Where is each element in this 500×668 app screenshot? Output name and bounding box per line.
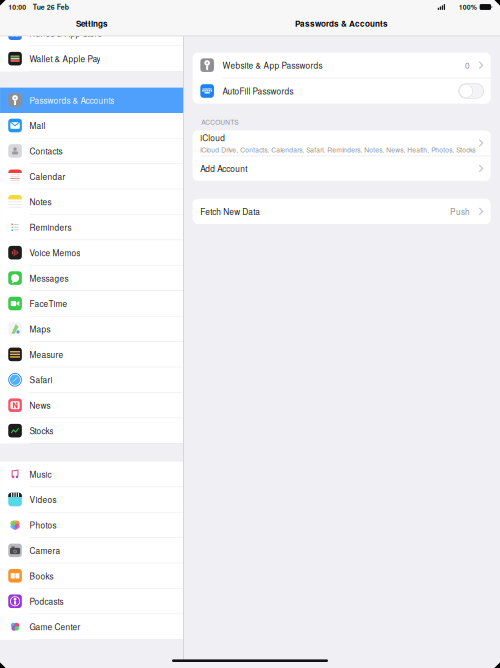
button[interactable]: A (0, 21, 183, 46)
staticText: Wallet & Apple Pay (29, 53, 100, 64)
staticText: News (29, 399, 50, 411)
staticText: Fetch New Data (200, 205, 260, 217)
staticText: Photos (29, 519, 56, 531)
staticText: 10:00 (8, 2, 26, 12)
staticText: Add Account (200, 163, 247, 174)
staticText: Stocks (29, 425, 53, 436)
staticText: Podcasts (29, 595, 63, 607)
button[interactable]: Books (0, 563, 183, 589)
button[interactable]: AutoFill Passwords (192, 78, 491, 104)
button[interactable]: Mail (0, 113, 183, 138)
button[interactable]: Stocks (0, 418, 183, 444)
button[interactable]: Passwords & Accounts (0, 88, 183, 113)
staticText: Measure (29, 348, 63, 360)
staticText: Mail (29, 120, 45, 131)
staticText: Books (29, 570, 53, 582)
button[interactable]: Safari (0, 367, 183, 393)
staticText: Push (450, 205, 470, 217)
staticText: Maps (29, 323, 50, 335)
staticText: Passwords & Accounts (29, 94, 114, 106)
button[interactable]: Reminders (0, 215, 183, 240)
button[interactable]: Videos (0, 487, 183, 512)
staticText: Settings (76, 18, 108, 29)
button[interactable]: iCloud (192, 130, 491, 156)
button[interactable]: FaceTime (0, 291, 183, 316)
staticText: 0 (465, 59, 470, 71)
button[interactable]: N (0, 393, 183, 418)
staticText: Tue 26 Feb (33, 2, 69, 12)
button[interactable]: Maps (0, 316, 183, 342)
button[interactable]: Podcasts (0, 589, 183, 614)
button[interactable]: Voice Memos (0, 240, 183, 266)
button[interactable]: Add Account (192, 156, 491, 181)
staticText: iTunes & App Store (29, 27, 102, 39)
staticText: A (12, 27, 18, 39)
staticText: Game Center (29, 621, 80, 633)
staticText: ACCOUNTS (201, 117, 238, 127)
staticText: Messages (29, 272, 68, 284)
button[interactable]: Photos (0, 512, 183, 538)
staticText: iCloud Drive, Contacts, Calendars, Safar… (200, 145, 475, 154)
staticText: N (13, 400, 18, 411)
button[interactable]: Game Center (0, 614, 183, 640)
button[interactable]: Calendar (0, 164, 183, 189)
staticText: Contacts (29, 145, 62, 157)
button[interactable]: Camera (0, 538, 183, 563)
button[interactable]: Fetch New Data (192, 199, 491, 224)
staticText: Calendar (29, 170, 65, 182)
staticText: Music (29, 468, 51, 480)
button[interactable]: Notes (0, 189, 183, 215)
staticText: AutoFill Passwords (222, 85, 293, 97)
button[interactable]: Messages (0, 266, 183, 291)
staticText: FaceTime (29, 298, 67, 309)
button[interactable]: Website & App Passwords (192, 52, 491, 78)
staticText: 100% (459, 2, 477, 12)
staticText: Voice Memos (29, 247, 80, 258)
button[interactable]: Contacts (0, 138, 183, 164)
staticText: iCloud (200, 132, 225, 144)
staticText: Camera (29, 544, 60, 556)
staticText: Safari (29, 374, 52, 386)
staticText: Passwords & Accounts (295, 18, 388, 29)
staticText: Notes (29, 196, 51, 208)
staticText: Videos (29, 494, 56, 505)
button[interactable]: Music (0, 462, 183, 487)
button[interactable]: Measure (0, 342, 183, 367)
button[interactable]: Wallet & Apple Pay (0, 46, 183, 72)
staticText: Website & App Passwords (222, 59, 322, 71)
staticText: Reminders (29, 221, 71, 233)
